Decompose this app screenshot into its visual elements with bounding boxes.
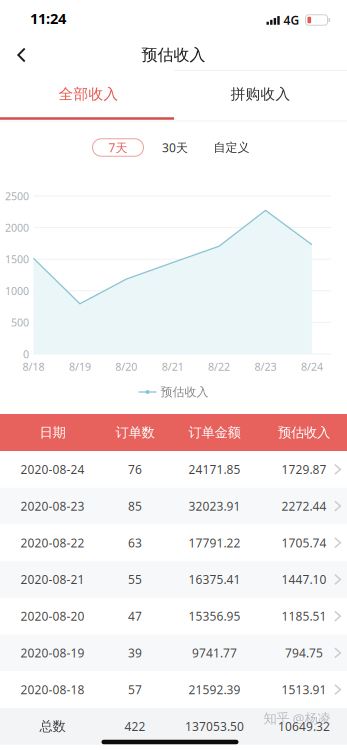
staticText: 30天	[162, 139, 188, 155]
button[interactable]: Back	[0, 35, 43, 75]
staticText: 137053.50	[185, 718, 244, 734]
staticText: 8/20	[115, 359, 137, 374]
staticText: 2000	[5, 220, 29, 235]
staticText: 15356.95	[188, 608, 240, 624]
staticText: 63	[128, 535, 142, 551]
staticText: 2500	[5, 189, 29, 203]
staticText: 8/21	[162, 359, 184, 374]
button[interactable]: 2020-08-22	[0, 524, 347, 561]
staticText: 2020-08-24	[20, 461, 84, 477]
staticText: 21592.39	[188, 682, 240, 697]
staticText: 总数	[39, 718, 65, 734]
staticText: 8/18	[22, 359, 44, 374]
button[interactable]: 2020-08-18	[0, 671, 347, 708]
staticText: 日期	[39, 424, 65, 441]
button[interactable]: 自定义	[208, 137, 254, 157]
staticText: 2020-08-20	[20, 608, 84, 624]
button[interactable]: 全部收入	[0, 67, 174, 120]
staticText: 7天	[108, 139, 127, 155]
staticText: 17791.22	[188, 535, 240, 551]
staticText: 预估收入	[141, 45, 205, 65]
staticText: 订单数	[115, 424, 154, 441]
staticText: 订单金额	[188, 424, 240, 441]
button[interactable]: 拼购收入	[174, 67, 347, 120]
staticText: 拼购收入	[230, 85, 290, 103]
staticText: 8/22	[208, 359, 230, 374]
staticText: 4G	[283, 12, 299, 28]
staticText: 1000	[5, 284, 29, 298]
button[interactable]: 2020-08-21	[0, 561, 347, 598]
button[interactable]: 2020-08-24	[0, 451, 347, 488]
staticText: 预估收入	[278, 424, 330, 441]
staticText: 794.75	[285, 645, 323, 661]
staticText: 8/23	[254, 359, 276, 374]
staticText: 76	[128, 461, 142, 477]
staticText: 422	[124, 718, 145, 734]
staticText: 1185.51	[281, 608, 326, 624]
button[interactable]: 30天	[155, 137, 195, 157]
staticText: 57	[128, 682, 142, 697]
staticText: 全部收入	[58, 85, 118, 103]
staticText: 39	[128, 645, 142, 661]
staticText: 2020-08-23	[20, 498, 84, 514]
staticText: 500	[11, 315, 29, 329]
staticText: 1705.74	[281, 535, 326, 551]
button[interactable]: 2020-08-20	[0, 598, 347, 634]
staticText: 自定义	[213, 140, 249, 155]
staticText: 16375.41	[188, 571, 240, 587]
staticText: 55	[128, 571, 142, 587]
staticText: 1729.87	[281, 461, 326, 477]
staticText: 预估收入	[160, 385, 208, 399]
staticText: 11:24	[30, 8, 66, 28]
staticText: 知乎 @杨凌	[263, 709, 330, 727]
staticText: 2020-08-18	[20, 682, 84, 697]
staticText: 2020-08-22	[20, 535, 84, 551]
staticText: 1447.10	[281, 571, 326, 587]
staticText: 85	[128, 498, 142, 514]
staticText: 32023.91	[188, 498, 240, 514]
button[interactable]: 7天	[92, 139, 143, 156]
staticText: 9741.77	[192, 645, 237, 661]
staticText: 8/19	[69, 359, 91, 374]
staticText: 10649.32	[278, 718, 330, 734]
staticText: 0	[23, 347, 29, 361]
staticText: 2272.44	[281, 498, 326, 514]
button[interactable]: 2020-08-23	[0, 488, 347, 524]
staticText: 2020-08-19	[20, 645, 84, 661]
staticText: 47	[128, 608, 142, 624]
staticText: 2020-08-21	[20, 571, 84, 587]
button[interactable]: 2020-08-19	[0, 634, 347, 671]
staticText: 8/24	[301, 359, 323, 374]
staticText: 24171.85	[188, 461, 240, 477]
staticText: 1500	[5, 252, 29, 266]
staticText: 1513.91	[281, 682, 326, 697]
